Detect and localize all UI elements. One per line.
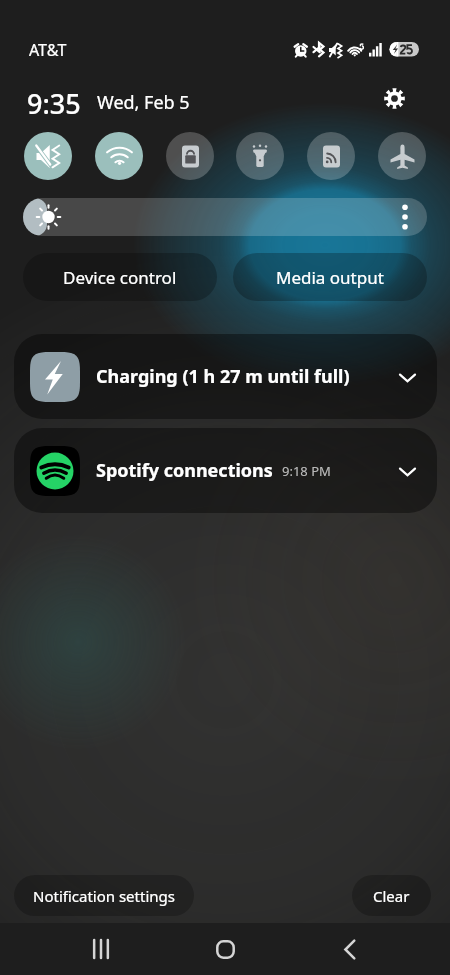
staticText: Notification settings (33, 886, 175, 906)
button[interactable]: Media output (233, 253, 427, 301)
staticText: AT&T (29, 39, 67, 61)
staticText: Device control (63, 266, 177, 289)
button[interactable]: Device control (23, 253, 217, 301)
staticText: 9:18 PM (282, 462, 331, 480)
button[interactable]: Expand notification (391, 455, 423, 487)
button[interactable]: Airplane mode (378, 132, 426, 180)
button[interactable]: Back (326, 925, 374, 973)
button[interactable]: Clear (352, 875, 431, 916)
button[interactable]: Brightness (23, 198, 427, 236)
button[interactable]: Recent apps (77, 925, 125, 973)
button[interactable]: Smart View (307, 132, 355, 180)
button[interactable]: Flashlight (236, 132, 284, 180)
button[interactable]: Spotify connections (14, 428, 437, 513)
button[interactable]: Charging (1 h 27 m until full) (14, 334, 437, 419)
staticText: Charging (1 h 27 m until full) (96, 364, 350, 389)
staticText: Media output (276, 266, 384, 289)
button[interactable]: Home (201, 925, 249, 973)
staticText: Wed, Feb 5 (97, 90, 190, 115)
button[interactable]: Screen lock (166, 132, 214, 180)
staticText: 9:35 (27, 85, 81, 122)
staticText: Clear (373, 886, 410, 906)
button[interactable]: Sound off (24, 132, 72, 180)
button[interactable]: Wi-Fi (95, 132, 143, 180)
staticText: Spotify connections (96, 458, 273, 483)
button[interactable]: Notification settings (14, 875, 194, 916)
button[interactable]: Expand notification (391, 361, 423, 393)
button[interactable]: Settings (376, 80, 412, 116)
